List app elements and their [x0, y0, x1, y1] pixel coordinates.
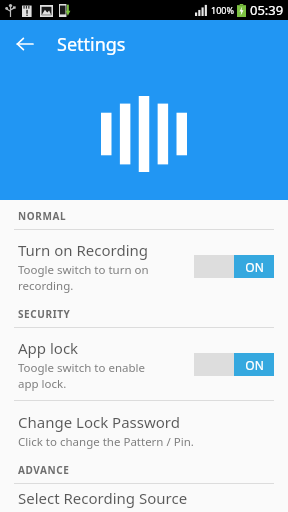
button[interactable]: Turn on Recording [0, 230, 288, 302]
button[interactable]: Back [7, 26, 43, 62]
staticText: Toogle switch to enable [18, 360, 145, 376]
button[interactable]: Toggle on [194, 353, 274, 376]
staticText: Turn on Recording [18, 240, 149, 260]
staticText: recording. [18, 278, 74, 294]
staticText: Settings [57, 32, 126, 57]
staticText: 100% [211, 4, 234, 16]
staticText: Select Recording Source [18, 488, 188, 508]
staticText: NORMAL [18, 209, 67, 223]
button[interactable]: Change Lock Password [0, 401, 288, 456]
staticText: ON [245, 357, 264, 373]
button[interactable]: App lock [0, 328, 288, 400]
staticText: Toogle switch to turn on [18, 262, 149, 278]
staticText: app lock. [18, 376, 67, 392]
staticText: ON [245, 259, 264, 275]
staticText: SECURITY [18, 307, 71, 321]
button[interactable]: Select Recording Source [0, 484, 288, 512]
staticText: ADVANCE [18, 463, 70, 477]
staticText: Change Lock Password [18, 412, 180, 432]
staticText: Click to change the Pattern / Pin. [18, 434, 194, 450]
button[interactable]: Toggle on [194, 255, 274, 278]
staticText: 05:39 [250, 1, 284, 19]
staticText: App lock [18, 338, 79, 358]
